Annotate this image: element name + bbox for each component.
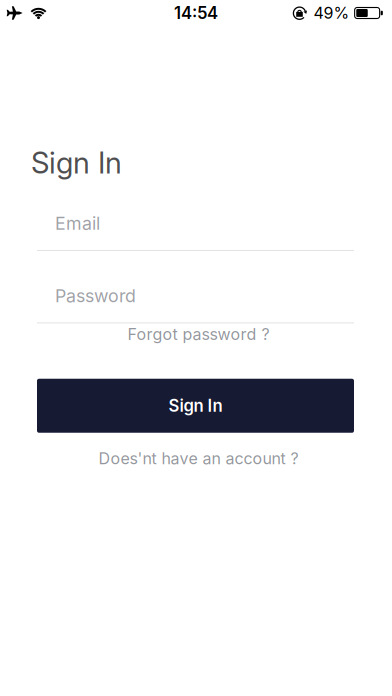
- button[interactable]: Password: [0, 285, 392, 323]
- staticText: Forgot password ?: [127, 324, 269, 344]
- staticText: Email: [55, 212, 100, 234]
- button[interactable]: Sign In: [37, 379, 354, 433]
- button[interactable]: Does'nt have an account ?: [0, 449, 392, 468]
- button[interactable]: Email: [0, 212, 392, 251]
- staticText: Does'nt have an account ?: [98, 449, 298, 468]
- staticText: 49%: [313, 3, 349, 23]
- button[interactable]: Forgot password ?: [0, 324, 392, 344]
- staticText: Sign In: [31, 145, 122, 180]
- staticText: Sign In: [168, 396, 222, 416]
- staticText: 14:54: [174, 3, 218, 23]
- staticText: Password: [55, 285, 136, 306]
